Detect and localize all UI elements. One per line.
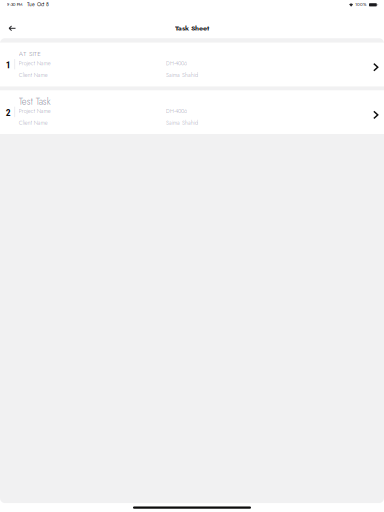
- staticText: Saima Shahid: [166, 119, 198, 127]
- staticText: Saima Shahid: [166, 71, 198, 79]
- staticText: Task Sheet: [175, 23, 209, 33]
- staticText: DH-4006: [166, 107, 187, 115]
- button[interactable]: 1: [0, 43, 384, 86]
- staticText: 2: [6, 107, 11, 118]
- staticText: Client Name: [19, 71, 48, 79]
- staticText: Client Name: [19, 119, 48, 127]
- staticText: Project Name: [19, 107, 51, 115]
- staticText: Project Name: [19, 59, 51, 67]
- staticText: AT SITE: [19, 49, 41, 58]
- staticText: 1: [6, 59, 11, 71]
- button[interactable]: Back: [1, 19, 23, 38]
- staticText: 100%: [355, 1, 366, 8]
- staticText: 9:30 PM: [7, 1, 23, 8]
- staticText: DH-4006: [166, 59, 187, 67]
- button[interactable]: 2: [0, 90, 384, 134]
- staticText: Tue Oct 8: [27, 1, 49, 8]
- staticText: Test Task: [19, 95, 51, 108]
